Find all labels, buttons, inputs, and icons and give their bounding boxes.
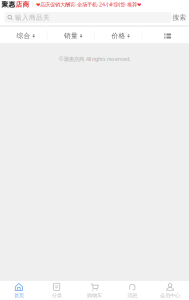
staticText: 搜索: [172, 13, 186, 22]
staticText: 聚惠: [1, 0, 15, 9]
staticText: 分类: [52, 292, 62, 299]
button[interactable]: 综合: [0, 27, 47, 43]
staticText: 综合: [17, 32, 31, 40]
staticText: ❤店庆促销大酬宾-全场手机-24小时到货-推荐❤: [36, 1, 141, 8]
button[interactable]: 切换列表视图: [142, 27, 189, 43]
staticText: 价格: [111, 32, 125, 40]
button[interactable]: 首页: [0, 279, 38, 300]
staticText: 输入商品关: [15, 13, 50, 22]
button[interactable]: 分类: [38, 279, 76, 300]
button[interactable]: 销量: [47, 27, 94, 43]
staticText: © 聚惠店商. All rights reserved.: [59, 55, 130, 63]
button[interactable]: 价格: [95, 27, 142, 43]
button[interactable]: 搜索: [171, 13, 187, 22]
button[interactable]: 购物车: [76, 279, 113, 300]
staticText: 店商: [15, 0, 29, 9]
button[interactable]: 会员中心: [151, 279, 189, 300]
staticText: 购物车: [87, 292, 102, 299]
button[interactable]: 消息: [113, 279, 151, 300]
staticText: 消息: [127, 292, 137, 299]
staticText: 会员中心: [160, 292, 180, 299]
staticText: 销量: [64, 32, 78, 40]
staticText: 首页: [14, 292, 24, 299]
